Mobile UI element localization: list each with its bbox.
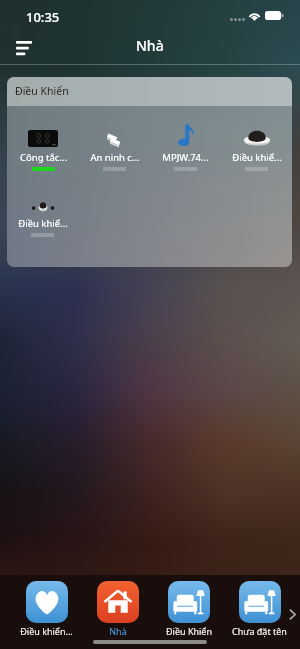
button[interactable]: An ninh c...	[79, 121, 150, 171]
button[interactable]: MPJW.74...	[150, 121, 221, 171]
staticText: Điều khiể...	[232, 151, 282, 164]
button[interactable]: Nhà	[82, 581, 153, 637]
staticText: Điều khiển...	[20, 625, 73, 637]
button[interactable]: Điều khiể...	[7, 187, 78, 237]
staticText: Chưa đặt tên	[232, 625, 287, 637]
staticText: Công tắc...	[20, 151, 67, 164]
button[interactable]: Điều Khiển	[153, 581, 224, 637]
button[interactable]: More tabs	[284, 606, 300, 622]
staticText: MPJW.74...	[162, 151, 209, 164]
button[interactable]: Điều khiển...	[11, 581, 82, 637]
button[interactable]: Chưa đặt tên	[224, 581, 295, 637]
staticText: Điều Khiển	[15, 84, 69, 98]
staticText: Điều khiể...	[18, 217, 68, 230]
button[interactable]: Menu	[8, 33, 40, 63]
staticText: Nhà	[136, 36, 164, 55]
staticText: An ninh c...	[90, 151, 140, 164]
button[interactable]: Điều khiể...	[221, 121, 292, 171]
staticText: Điều Khiển	[166, 625, 212, 637]
staticText: 10:35	[26, 8, 60, 26]
button[interactable]: Công tắc...	[7, 121, 79, 171]
staticText: Nhà	[109, 625, 127, 637]
